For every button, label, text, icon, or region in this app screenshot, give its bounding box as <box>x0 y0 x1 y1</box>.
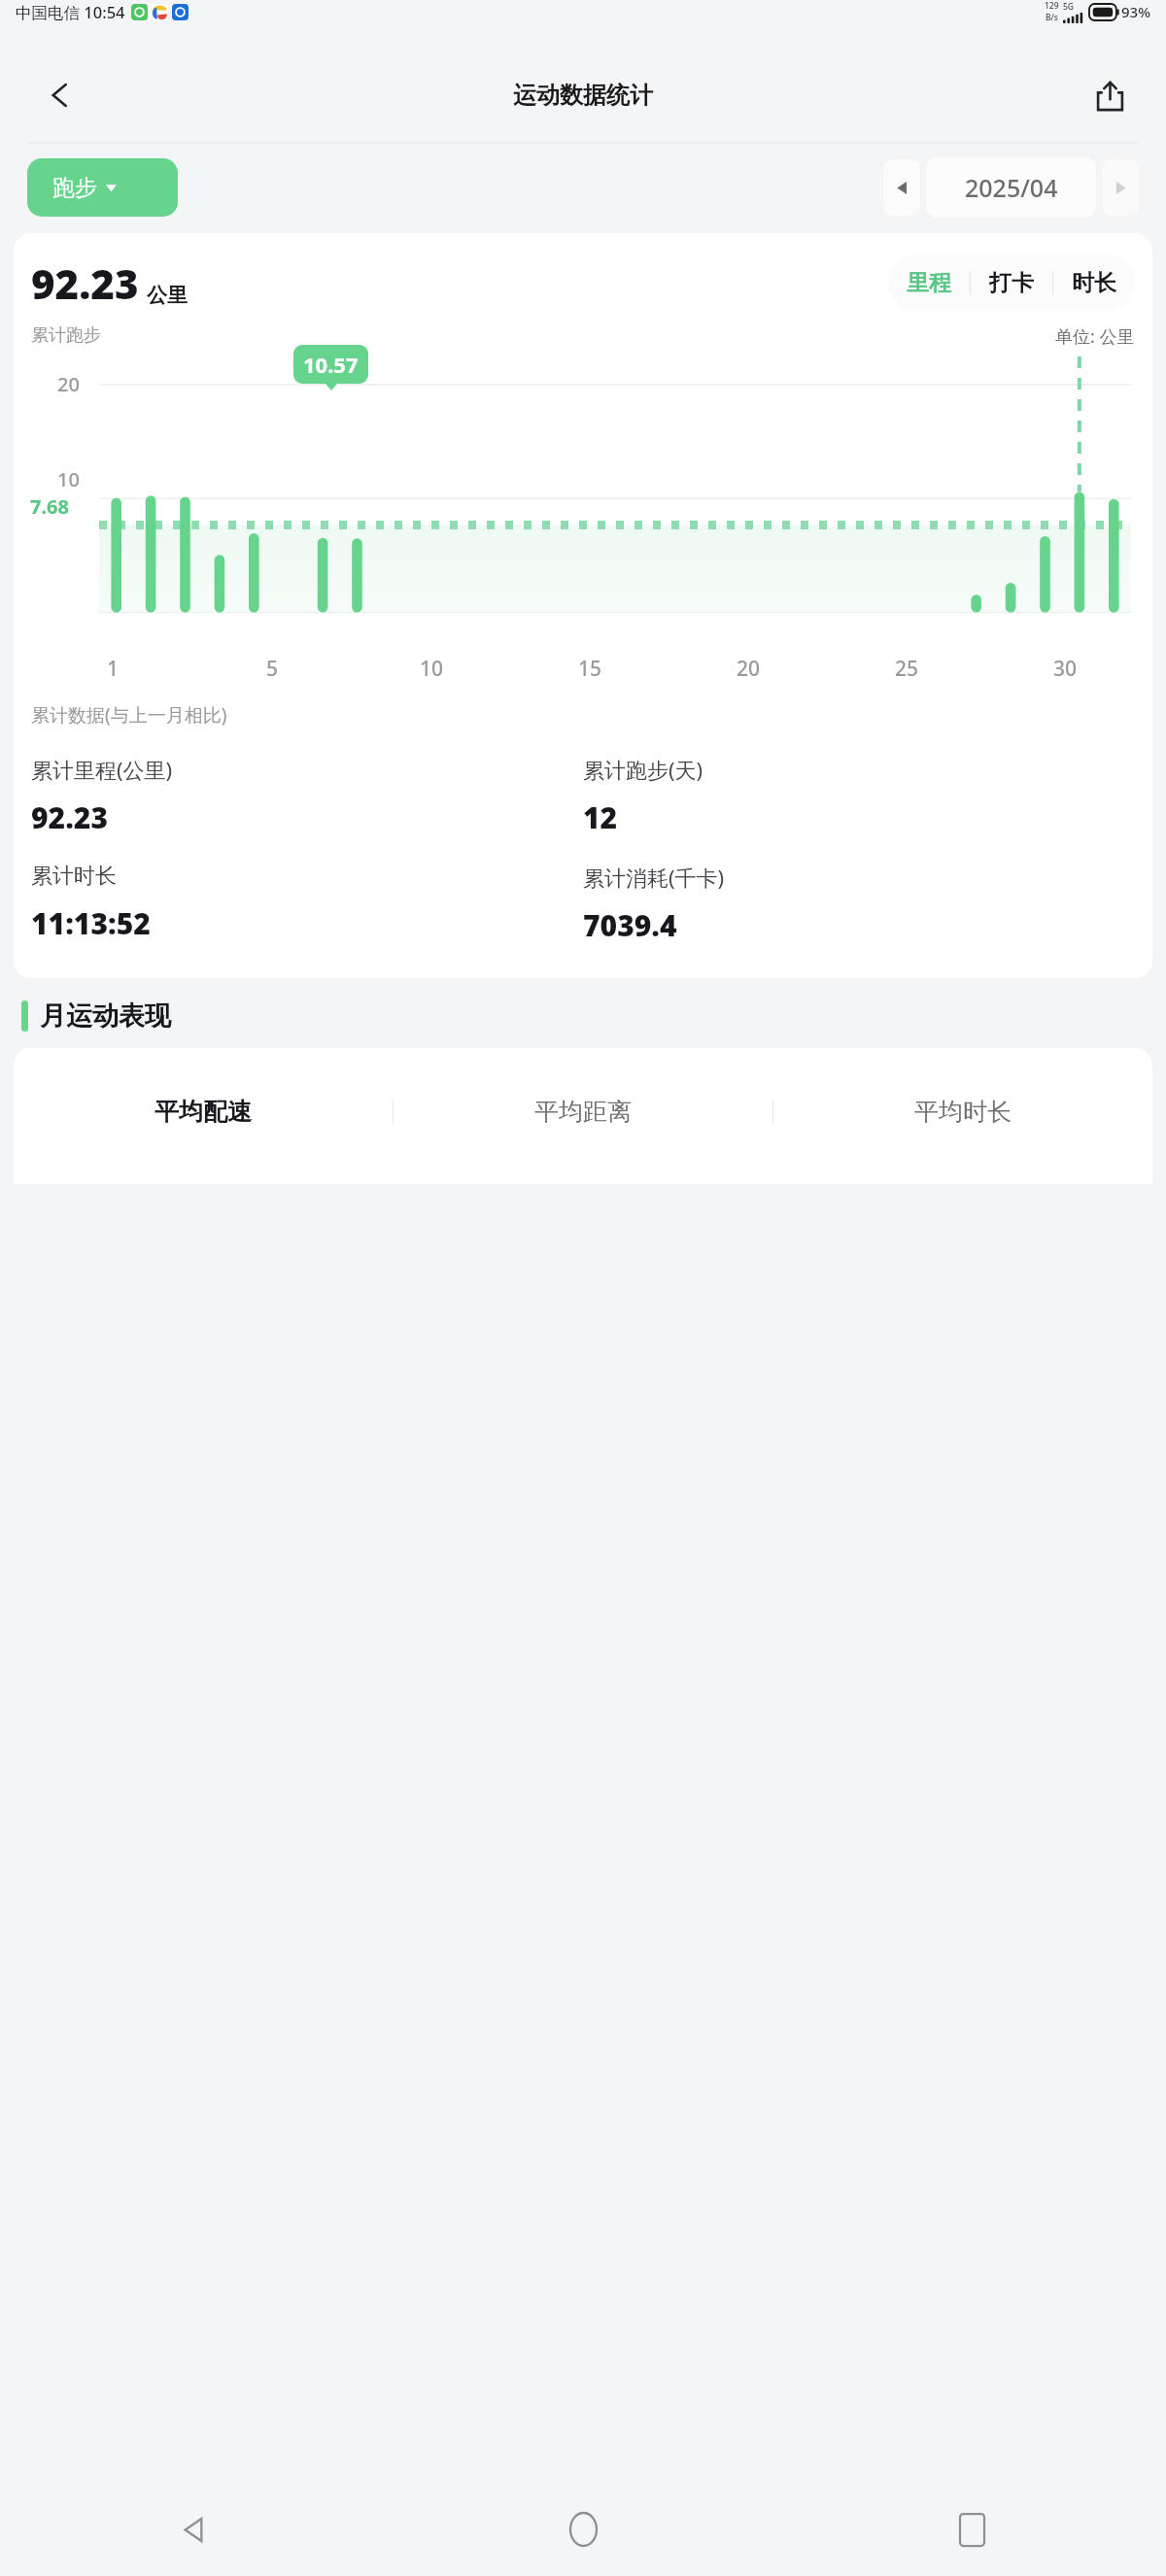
staticText: 中国电信 10:54 <box>16 1 125 23</box>
staticText: 7039.4 <box>583 905 677 945</box>
button[interactable]: Home <box>389 2483 777 2576</box>
staticText: 打卡 <box>989 269 1034 297</box>
staticText: 7.68 <box>30 493 69 520</box>
staticText: 累计消耗(千卡) <box>583 863 725 892</box>
staticText: 2025/04 <box>965 171 1058 204</box>
staticText: 92.23 <box>31 255 139 311</box>
staticText: 平均配速 <box>154 1097 252 1127</box>
staticText: 12 <box>583 797 618 837</box>
staticText: 93% <box>1121 2 1150 21</box>
button[interactable]: Back <box>0 2483 389 2576</box>
button[interactable]: Back <box>33 68 87 122</box>
button[interactable]: 打卡 <box>971 254 1052 311</box>
staticText: B/s <box>1046 12 1058 23</box>
staticText: 累计数据(与上一月相比) <box>31 702 227 728</box>
staticText: 累计里程(公里) <box>31 755 173 784</box>
button[interactable]: 平均配速 <box>14 1097 393 1127</box>
button[interactable]: 跑步 <box>27 158 178 217</box>
staticText: 1 <box>107 655 120 683</box>
staticText: 10.57 <box>303 350 359 379</box>
button[interactable]: 平均距离 <box>394 1097 772 1127</box>
staticText: 累计跑步 <box>31 324 101 347</box>
staticText: 20 <box>737 655 761 683</box>
staticText: 11:13:52 <box>31 903 151 943</box>
button[interactable]: 平均时长 <box>773 1097 1152 1127</box>
button[interactable]: Next month <box>1102 159 1139 216</box>
staticText: 公里 <box>147 283 188 308</box>
staticText: 10 <box>420 655 444 683</box>
staticText: 15 <box>578 655 602 683</box>
staticText: 平均距离 <box>534 1097 632 1127</box>
staticText: 30 <box>1053 655 1078 683</box>
staticText: 129 <box>1045 0 1059 12</box>
staticText: 平均时长 <box>914 1097 1012 1127</box>
button[interactable]: Recents <box>777 2483 1166 2576</box>
button[interactable]: Share <box>1082 68 1137 122</box>
button[interactable]: Previous month <box>883 159 920 216</box>
button[interactable]: 里程 <box>888 254 970 311</box>
staticText: 累计时长 <box>31 863 117 890</box>
staticText: 5 <box>266 655 279 683</box>
staticText: 月运动表现 <box>40 1000 171 1033</box>
staticText: 10 <box>57 466 80 492</box>
staticText: 92.23 <box>31 797 108 837</box>
staticText: 时长 <box>1072 269 1116 297</box>
staticText: 25 <box>895 655 919 683</box>
button[interactable]: 时长 <box>1053 254 1135 311</box>
staticText: 累计跑步(天) <box>583 755 703 784</box>
staticText: 跑步 <box>52 174 97 202</box>
staticText: 运动数据统计 <box>513 81 653 110</box>
button[interactable]: 2025/04 <box>926 157 1096 218</box>
staticText: 单位: 公里 <box>1055 324 1135 349</box>
staticText: 里程 <box>907 269 951 297</box>
staticText: 20 <box>57 371 80 397</box>
staticText: 5G <box>1063 1 1075 13</box>
